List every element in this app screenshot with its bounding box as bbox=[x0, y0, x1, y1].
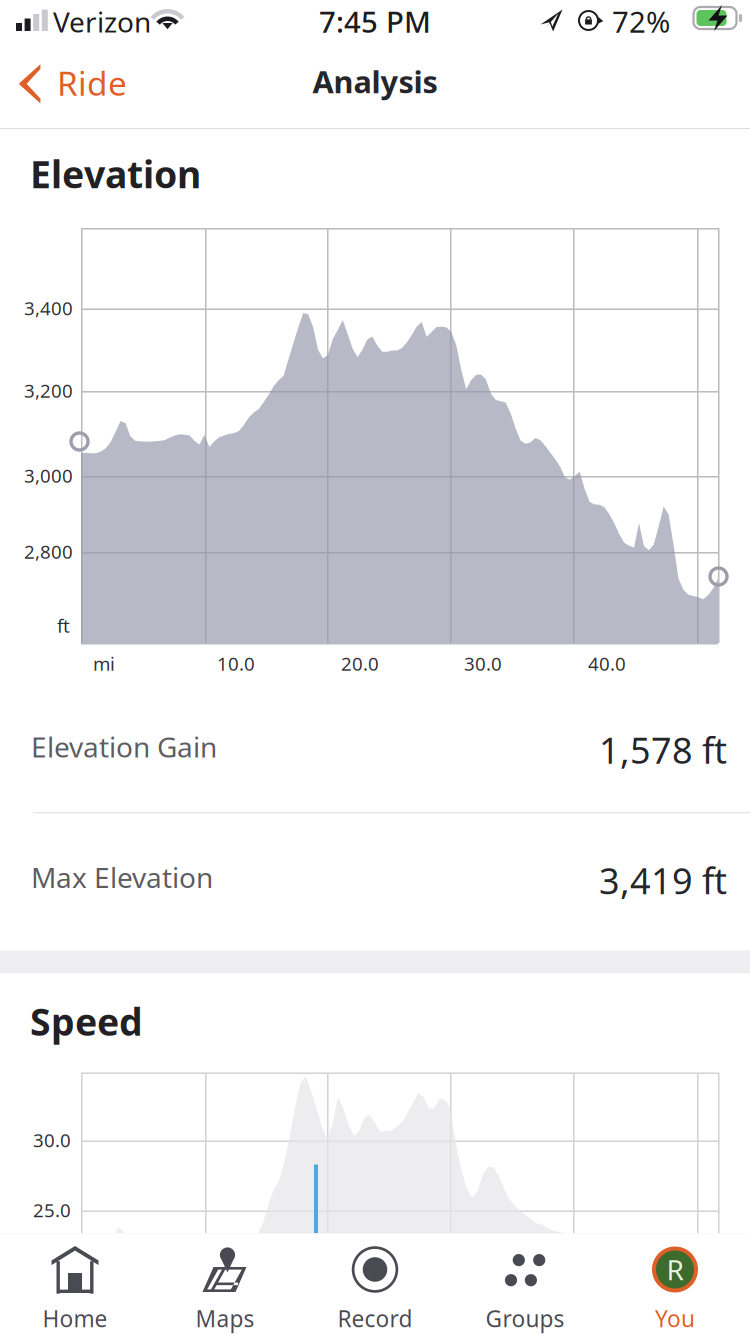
staticText: R bbox=[666, 1251, 683, 1288]
button[interactable]: Maps bbox=[150, 1233, 300, 1333]
staticText: Verizon bbox=[53, 3, 151, 40]
staticText: 3,200 bbox=[24, 378, 73, 403]
staticText: 1,578 ft bbox=[599, 726, 727, 774]
button[interactable]: Elevation Gain bbox=[0, 682, 750, 812]
staticText: Maps bbox=[195, 1303, 254, 1334]
staticText: 3,419 ft bbox=[599, 856, 727, 904]
staticText: Ride bbox=[57, 61, 127, 105]
staticText: ft bbox=[57, 613, 70, 638]
staticText: 3,400 bbox=[24, 295, 73, 320]
staticText: Elevation Gain bbox=[31, 728, 217, 765]
button[interactable]: Groups bbox=[450, 1233, 600, 1333]
staticText: Elevation bbox=[30, 149, 201, 199]
staticText: 10.0 bbox=[217, 651, 255, 676]
staticText: mi bbox=[93, 651, 115, 676]
staticText: 20.0 bbox=[341, 651, 379, 676]
staticText: 3,000 bbox=[24, 463, 73, 488]
staticText: Speed bbox=[30, 996, 143, 1046]
staticText: 7:45 PM bbox=[319, 2, 431, 41]
staticText: 2,800 bbox=[24, 539, 73, 564]
staticText: 40.0 bbox=[588, 651, 626, 676]
button[interactable]: Record bbox=[300, 1233, 450, 1333]
staticText: 72% bbox=[612, 2, 670, 41]
staticText: Groups bbox=[485, 1303, 564, 1334]
button[interactable]: Home bbox=[0, 1233, 150, 1333]
staticText: 25.0 bbox=[33, 1197, 71, 1222]
staticText: 30.0 bbox=[464, 651, 502, 676]
staticText: Max Elevation bbox=[31, 858, 213, 896]
button[interactable]: Max Elevation bbox=[0, 813, 750, 950]
button[interactable]: Ride bbox=[0, 44, 145, 128]
button[interactable]: R bbox=[600, 1233, 750, 1333]
staticText: 30.0 bbox=[33, 1127, 71, 1152]
staticText: Home bbox=[42, 1303, 107, 1334]
staticText: You bbox=[655, 1303, 695, 1334]
staticText: Analysis bbox=[312, 61, 437, 102]
staticText: Record bbox=[337, 1303, 412, 1334]
